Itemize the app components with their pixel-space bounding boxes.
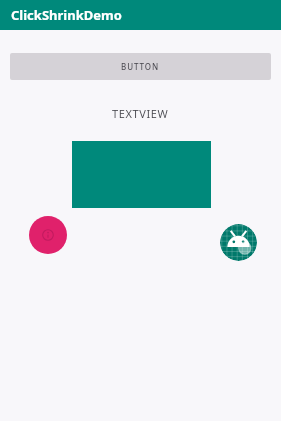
button[interactable]: BUTTON — [10, 53, 271, 80]
staticText: ClickShrinkDemo — [11, 6, 122, 24]
staticText: BUTTON — [121, 61, 160, 72]
button[interactable]: Android avatar — [220, 224, 257, 261]
staticText: TEXTVIEW — [112, 106, 169, 121]
button[interactable]: Info — [29, 216, 67, 254]
